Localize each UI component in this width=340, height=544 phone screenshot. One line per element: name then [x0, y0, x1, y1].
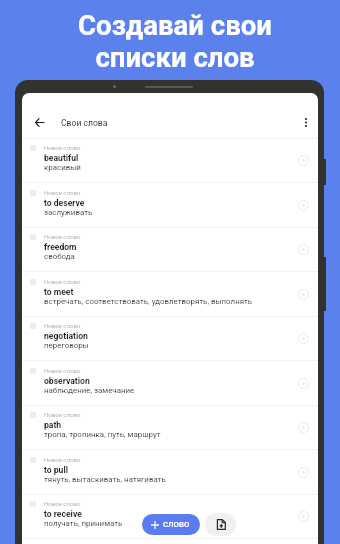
button[interactable]: Новое слово — [22, 317, 318, 361]
button[interactable]: More options — [297, 113, 315, 131]
staticText: Новое слово — [44, 322, 81, 329]
button[interactable]: Новое слово — [22, 139, 318, 183]
staticText: Новое слово — [44, 278, 81, 285]
staticText: Новое слово — [44, 456, 81, 463]
staticText: to pull — [44, 465, 68, 475]
staticText: to receive — [44, 509, 82, 519]
staticText: to deserve — [44, 198, 85, 208]
staticText: СЛОВО — [163, 520, 190, 529]
staticText: красивый — [44, 163, 295, 172]
staticText: Новое слово — [44, 189, 81, 196]
button[interactable]: Play — [295, 464, 312, 481]
staticText: to meet — [44, 287, 74, 297]
button[interactable]: Back — [28, 111, 50, 133]
button[interactable]: Новое слово — [22, 184, 318, 228]
button[interactable]: Play — [295, 152, 312, 169]
button[interactable]: Новое слово — [22, 495, 318, 539]
staticText: получать, принимать — [44, 519, 295, 528]
staticText: тропа, тропинка, путь, маршрут — [44, 430, 295, 439]
staticText: наблюдение, замечание — [44, 386, 295, 395]
button[interactable]: Play — [295, 419, 312, 436]
staticText: Новое слово — [44, 144, 81, 151]
staticText: заслуживать — [44, 208, 295, 217]
button[interactable]: Play — [295, 197, 312, 214]
button[interactable]: Play — [295, 375, 312, 392]
staticText: тянуть, вытаскивать, натягивать — [44, 475, 295, 484]
button[interactable]: Новое слово — [22, 362, 318, 406]
staticText: freedom — [44, 242, 77, 252]
staticText: свобода — [44, 252, 295, 261]
button[interactable]: Play — [295, 330, 312, 347]
button[interactable]: Новое слово — [22, 406, 318, 450]
staticText: Новое слово — [44, 500, 81, 507]
staticText: переговоры — [44, 341, 295, 350]
staticText: path — [44, 420, 62, 430]
staticText: Новое слово — [44, 367, 81, 374]
button[interactable]: СЛОВО — [142, 514, 200, 535]
button[interactable]: Play — [295, 241, 312, 258]
button[interactable]: Новое слово — [22, 273, 318, 317]
staticText: встречать, соответствовать, удовлетворят… — [44, 297, 295, 306]
staticText: Новое слово — [44, 233, 81, 240]
staticText: Свои слова — [61, 118, 108, 128]
button[interactable]: Новое слово — [22, 228, 318, 272]
staticText: observation — [44, 376, 90, 386]
button[interactable]: Новое слово — [22, 451, 318, 495]
button[interactable]: Play — [295, 508, 312, 525]
button[interactable]: Import file — [205, 513, 236, 536]
button[interactable]: Play — [295, 286, 312, 303]
staticText: Создавай свои списки слов — [5, 9, 340, 74]
staticText: beautiful — [44, 153, 79, 163]
staticText: negotiation — [44, 331, 88, 341]
staticText: Новое слово — [44, 411, 81, 418]
